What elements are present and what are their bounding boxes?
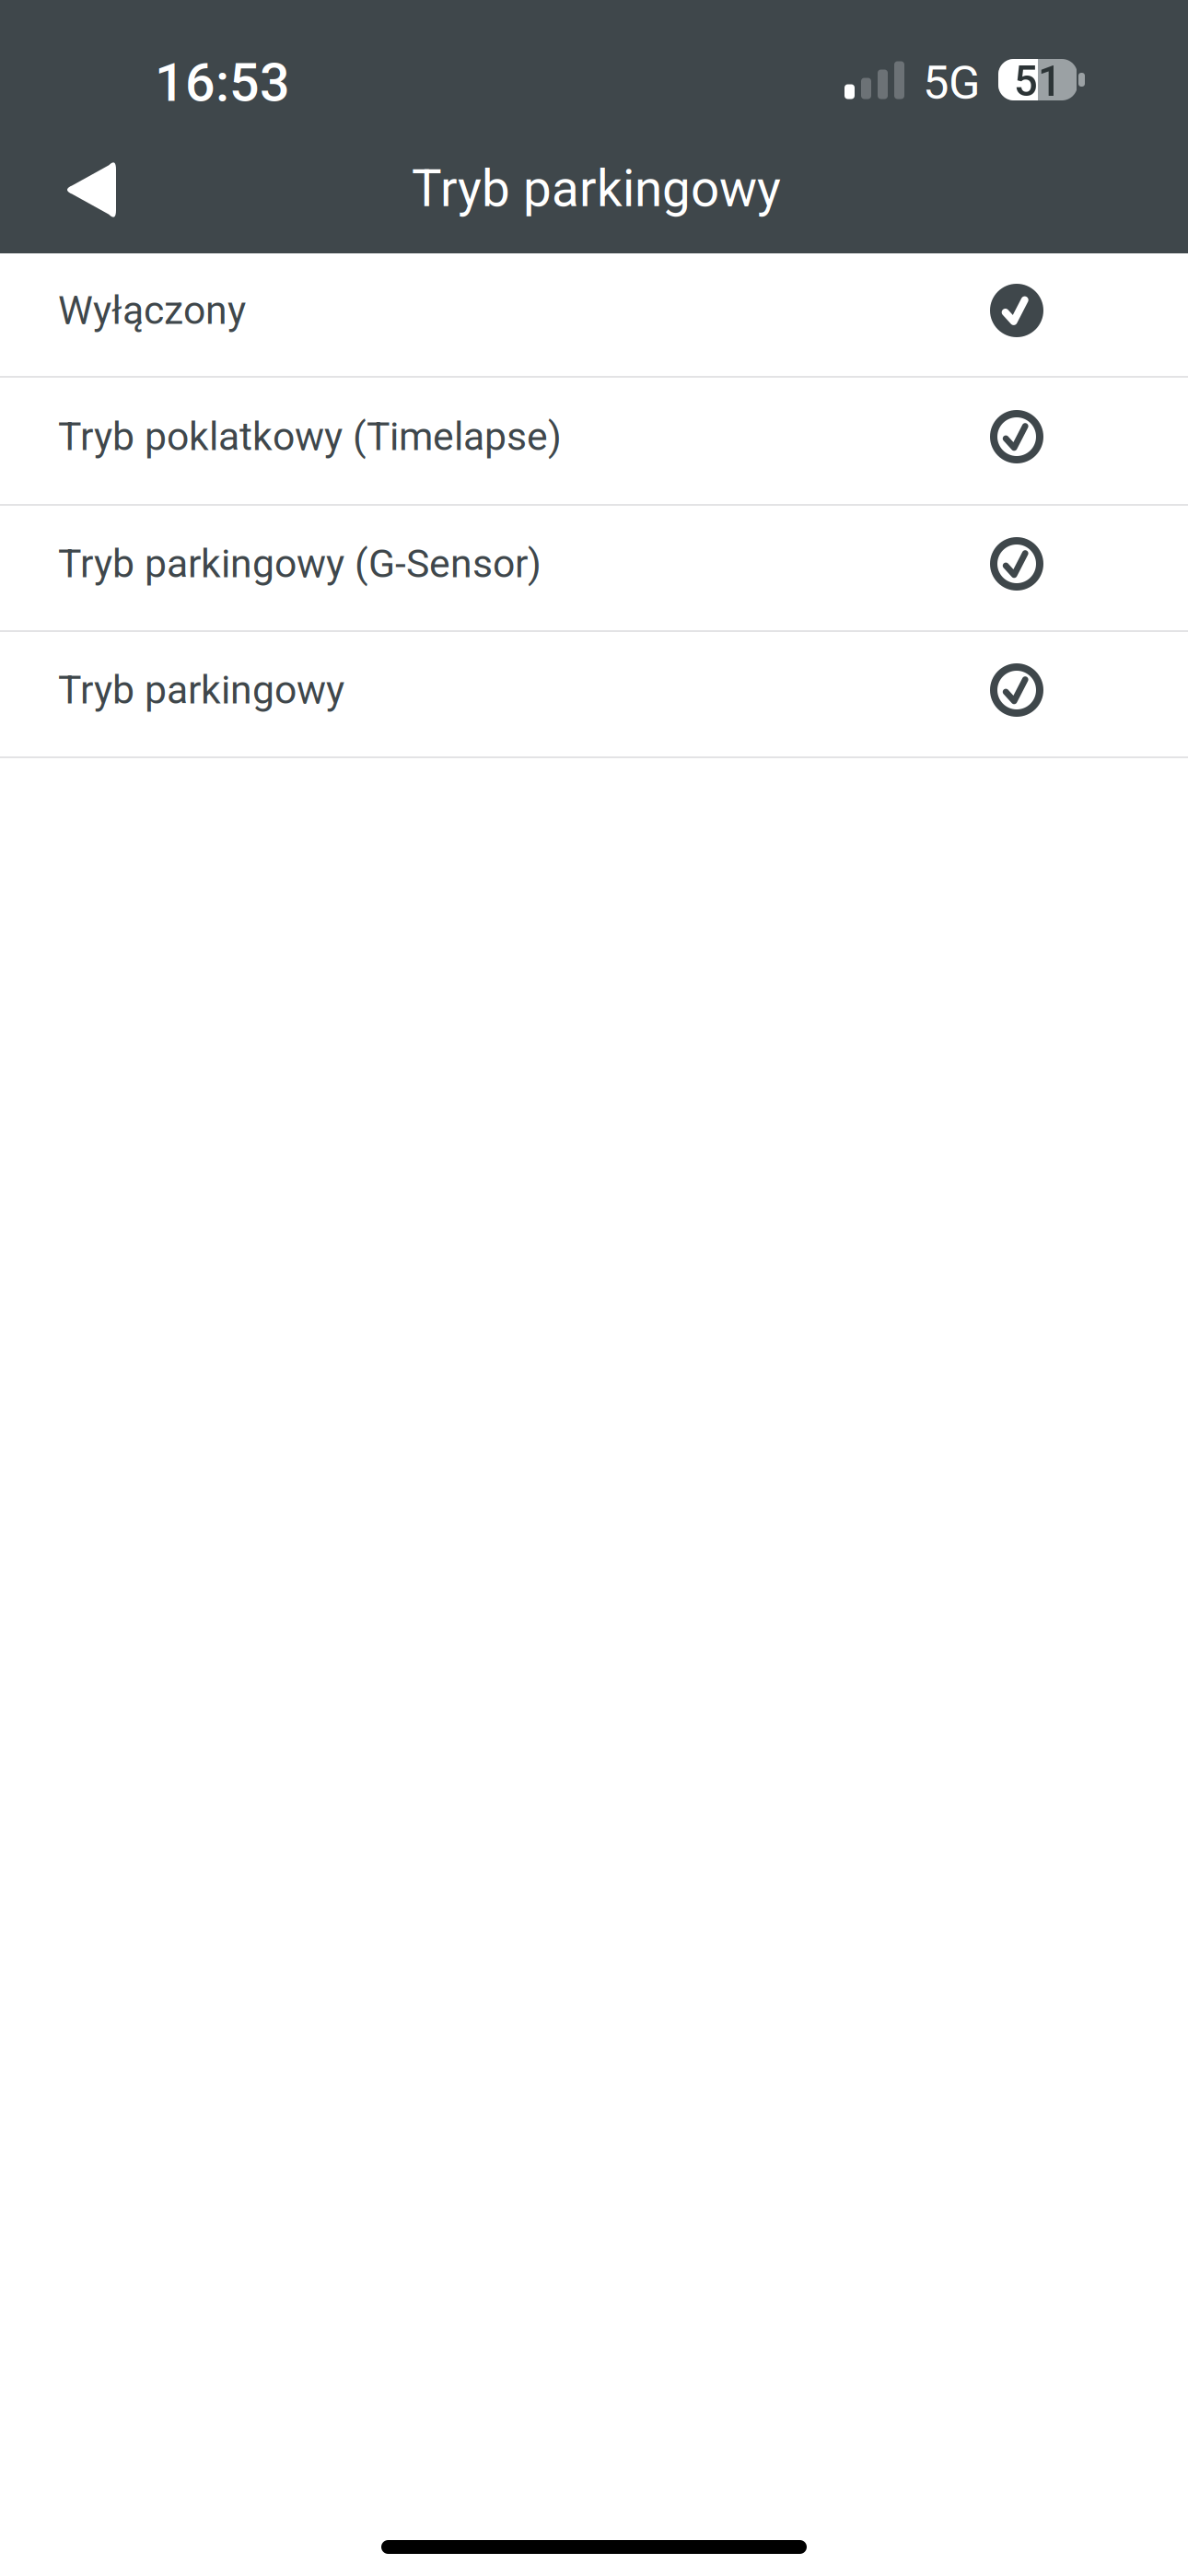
staticText: Tryb parkingowy (412, 159, 781, 218)
staticText: 16:53 (155, 52, 290, 114)
staticText: 5G (923, 56, 981, 110)
button[interactable]: Back (0, 135, 134, 252)
button[interactable]: Tryb poklatkowy (Timelapse) (0, 378, 1188, 506)
staticText: Wyłączony (58, 287, 246, 334)
button[interactable]: Wyłączony (0, 253, 1188, 378)
staticText: Tryb parkingowy (G-Sensor) (58, 541, 542, 587)
staticText: Tryb parkingowy (58, 667, 344, 713)
button[interactable]: Tryb parkingowy (0, 632, 1188, 758)
staticText: Tryb poklatkowy (Timelapse) (58, 414, 562, 460)
staticText: 51 (1014, 57, 1062, 106)
button[interactable]: Tryb parkingowy (G-Sensor) (0, 506, 1188, 632)
